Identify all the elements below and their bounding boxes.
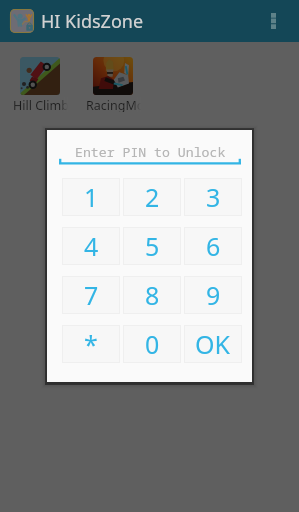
button[interactable]: 7 [62, 276, 120, 314]
staticText: Enter PIN to Unlock [75, 143, 226, 161]
staticText: * [84, 327, 98, 361]
staticText: 2 [145, 180, 160, 214]
button[interactable]: 9 [184, 276, 242, 314]
staticText: 9 [206, 278, 221, 312]
button[interactable]: More options [256, 0, 290, 42]
staticText: 1 [84, 180, 99, 214]
staticText: 3 [206, 180, 221, 214]
staticText: 6 [206, 229, 221, 263]
button[interactable]: 1 [62, 178, 120, 216]
button[interactable]: 0 [123, 325, 181, 363]
staticText: HI KidsZone [41, 9, 144, 34]
button[interactable]: Hill Climb [9, 57, 71, 112]
button[interactable]: 5 [123, 227, 181, 265]
staticText: 5 [145, 229, 160, 263]
staticText: 0 [145, 327, 160, 361]
staticText: RacingMo [86, 97, 141, 112]
staticText: OK [195, 327, 231, 361]
button[interactable]: 6 [184, 227, 242, 265]
button[interactable]: * [62, 325, 120, 363]
button[interactable]: RacingMo [82, 57, 144, 112]
staticText: 7 [84, 278, 99, 312]
button[interactable]: 2 [123, 178, 181, 216]
staticText: 4 [84, 229, 99, 263]
button[interactable]: 8 [123, 276, 181, 314]
button[interactable]: OK [184, 325, 242, 363]
button[interactable]: 3 [184, 178, 242, 216]
staticText: 8 [145, 278, 160, 312]
staticText: Hill Climb [13, 97, 68, 112]
button[interactable]: 4 [62, 227, 120, 265]
